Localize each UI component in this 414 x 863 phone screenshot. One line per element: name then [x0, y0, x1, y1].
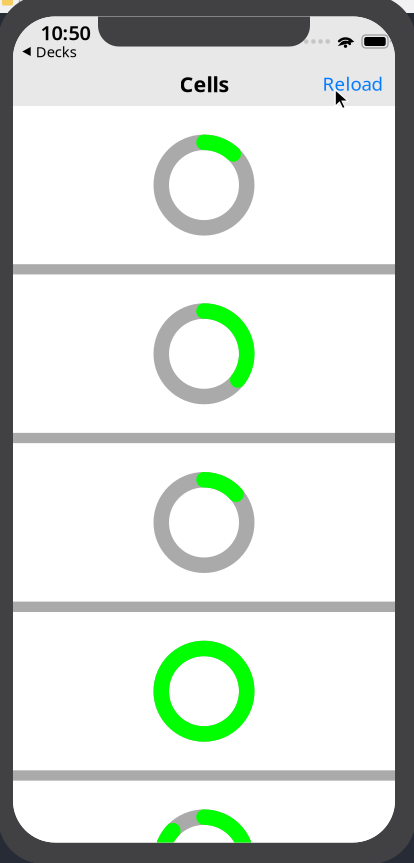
- button[interactable]: [13, 781, 395, 863]
- staticText: Con: [18, 0, 42, 10]
- button[interactable]: Reload: [304, 61, 400, 105]
- staticText: Cells: [179, 70, 229, 98]
- staticText: 10:50: [40, 19, 90, 46]
- button[interactable]: [13, 106, 395, 264]
- button[interactable]: [13, 612, 395, 770]
- button[interactable]: [13, 275, 395, 433]
- staticText: Decks: [36, 42, 77, 61]
- staticText: Reload: [322, 71, 382, 96]
- button[interactable]: [13, 443, 395, 602]
